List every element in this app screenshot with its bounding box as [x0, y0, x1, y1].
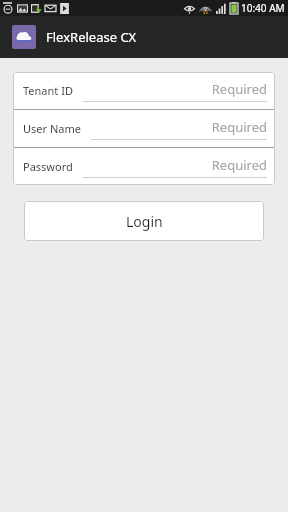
staticText: Login — [126, 212, 163, 231]
button[interactable]: Login — [24, 201, 264, 241]
staticText: User Name — [23, 121, 81, 136]
button[interactable]: User Name — [13, 110, 275, 147]
staticText: FlexRelease CX — [46, 28, 137, 46]
button[interactable]: Password — [13, 148, 275, 185]
staticText: Required — [211, 118, 267, 136]
staticText: Required — [211, 80, 267, 98]
staticText: Tenant ID — [23, 83, 73, 98]
button[interactable]: Tenant ID — [13, 72, 275, 109]
staticText: Password — [23, 159, 73, 174]
staticText: Required — [211, 156, 267, 174]
staticText: 10:40 AM — [241, 1, 285, 15]
